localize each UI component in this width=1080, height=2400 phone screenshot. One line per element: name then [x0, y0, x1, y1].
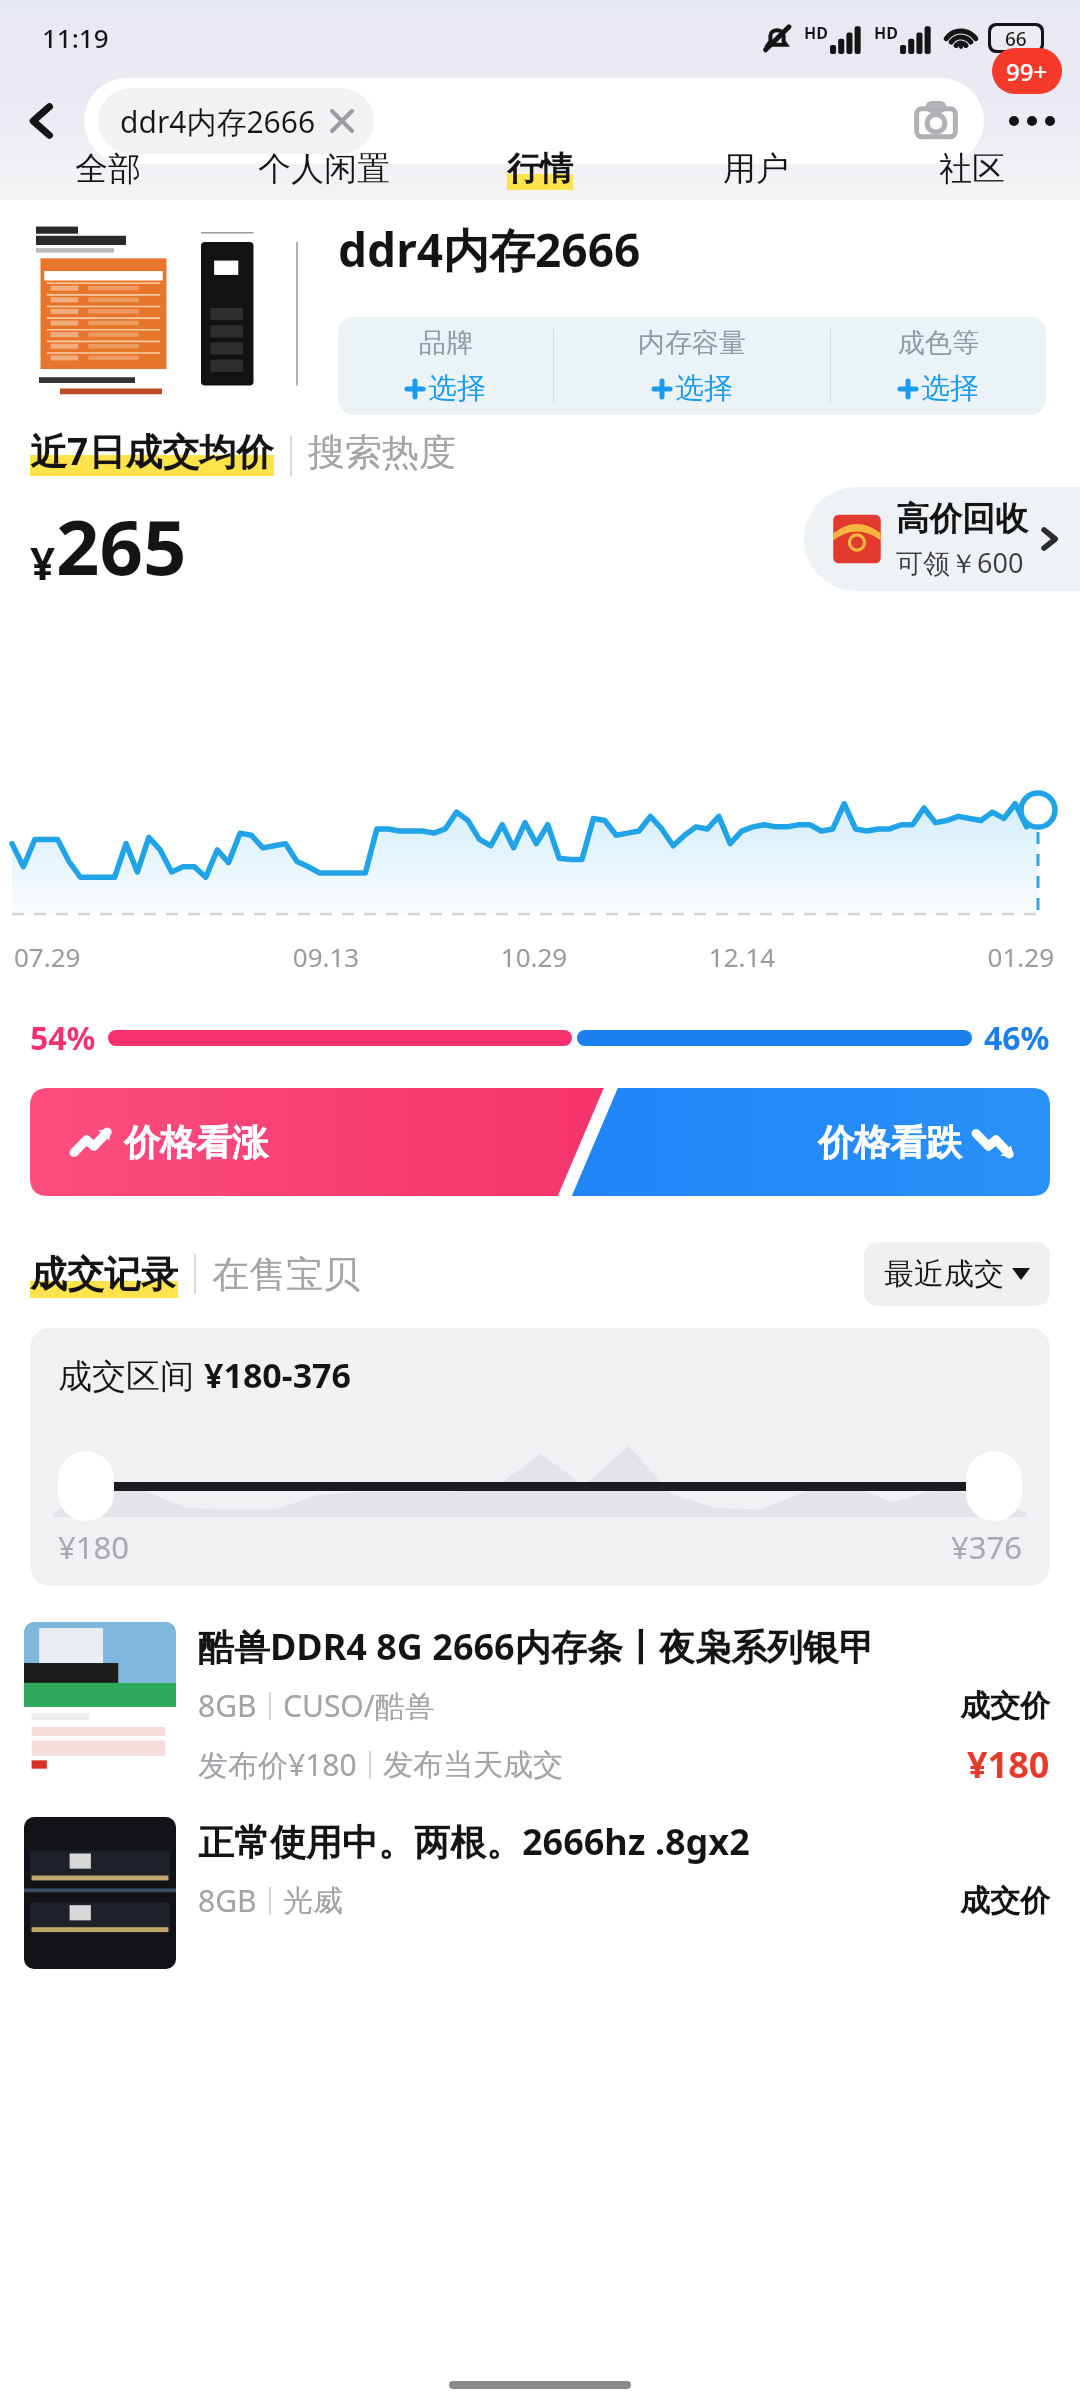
button[interactable]: 社区: [864, 148, 1080, 190]
staticText: ¥180-376: [204, 1352, 352, 1398]
staticText: 最近成交: [884, 1255, 1004, 1293]
staticText: ¥180: [58, 1526, 129, 1568]
staticText: 个人闲置: [258, 148, 390, 190]
staticText: 光威: [283, 1882, 343, 1920]
button[interactable]: 酷兽DDR4 8G 2666内存条丨夜枭系列银甲: [24, 1622, 1050, 1789]
staticText: 8GB: [198, 1880, 257, 1921]
staticText: 成交区间: [58, 1355, 194, 1398]
button[interactable]: 价格看涨: [72, 1120, 268, 1165]
staticText: 成交价: [960, 1882, 1050, 1920]
staticText: HD: [804, 22, 828, 44]
staticText: 成交价: [960, 1687, 1050, 1725]
button[interactable]: 近7日成交均价: [30, 425, 274, 476]
staticText: 全部: [75, 148, 141, 190]
button[interactable]: 成色等: [831, 317, 1046, 415]
button[interactable]: 品牌: [338, 317, 553, 415]
staticText: 行情: [507, 148, 573, 190]
button[interactable]: 高价回收: [804, 487, 1080, 591]
staticText: 内存容量: [638, 326, 746, 360]
staticText: 发布价¥180: [198, 1744, 357, 1785]
staticText: ¥180: [967, 1740, 1050, 1789]
staticText: HD: [874, 22, 898, 44]
button[interactable]: 正常使用中。两根。2666hz .8gx2: [24, 1817, 1050, 1969]
staticText: 价格看跌: [818, 1120, 962, 1165]
staticText: 成交记录: [30, 1251, 178, 1298]
staticText: 99+: [1006, 55, 1048, 88]
button[interactable]: 成交记录: [30, 1251, 178, 1298]
staticText: CUSO/酷兽: [283, 1685, 435, 1726]
staticText: 54%: [30, 1016, 96, 1060]
button[interactable]: More options: [984, 78, 1080, 164]
staticText: ddr4内存2666: [120, 101, 316, 142]
button[interactable]: 在售宝贝: [212, 1251, 360, 1298]
button[interactable]: 搜索热度: [308, 429, 456, 476]
button[interactable]: Camera search: [910, 95, 962, 147]
staticText: 品牌: [419, 326, 473, 360]
button[interactable]: 价格看跌: [818, 1120, 1014, 1165]
staticText: 10.29: [430, 939, 638, 974]
staticText: 用户: [723, 148, 789, 190]
staticText: 01.29: [846, 939, 1054, 974]
staticText: 09.13: [222, 939, 430, 974]
staticText: 12.14: [638, 939, 846, 974]
staticText: 酷兽DDR4 8G 2666内存条丨夜枭系列银甲: [198, 1622, 875, 1671]
button[interactable]: Product image: [18, 204, 318, 409]
staticText: 8GB: [198, 1685, 257, 1726]
button[interactable]: Min price: [58, 1451, 114, 1521]
staticText: 46%: [984, 1016, 1050, 1060]
staticText: 社区: [939, 148, 1005, 190]
staticText: 高价回收: [896, 498, 1028, 540]
staticText: 选择: [675, 370, 733, 407]
staticText: 可领￥600: [896, 544, 1024, 581]
button[interactable]: ddr4内存2666: [84, 78, 984, 164]
staticText: 价格看涨: [124, 1120, 268, 1165]
button[interactable]: 最近成交: [864, 1242, 1050, 1306]
staticText: 选择: [428, 370, 486, 407]
staticText: 正常使用中。两根。2666hz .8gx2: [198, 1817, 750, 1866]
staticText: ddr4内存2666: [338, 218, 641, 281]
staticText: ¥376: [951, 1526, 1022, 1568]
staticText: 成色等: [898, 326, 979, 360]
button[interactable]: Back: [0, 79, 84, 163]
button[interactable]: Max price: [966, 1451, 1022, 1521]
button[interactable]: 行情: [432, 148, 648, 190]
staticText: 11:19: [42, 20, 109, 55]
button[interactable]: 个人闲置: [216, 148, 432, 190]
staticText: 265: [56, 494, 187, 598]
staticText: 发布当天成交: [383, 1746, 563, 1784]
staticText: 选择: [921, 370, 979, 407]
button[interactable]: 用户: [648, 148, 864, 190]
button[interactable]: 全部: [0, 148, 216, 190]
staticText: 66: [1005, 26, 1027, 50]
staticText: ¥: [30, 533, 56, 593]
staticText: 07.29: [14, 939, 222, 974]
staticText: 近7日成交均价: [30, 425, 274, 476]
button[interactable]: 内存容量: [554, 317, 830, 415]
